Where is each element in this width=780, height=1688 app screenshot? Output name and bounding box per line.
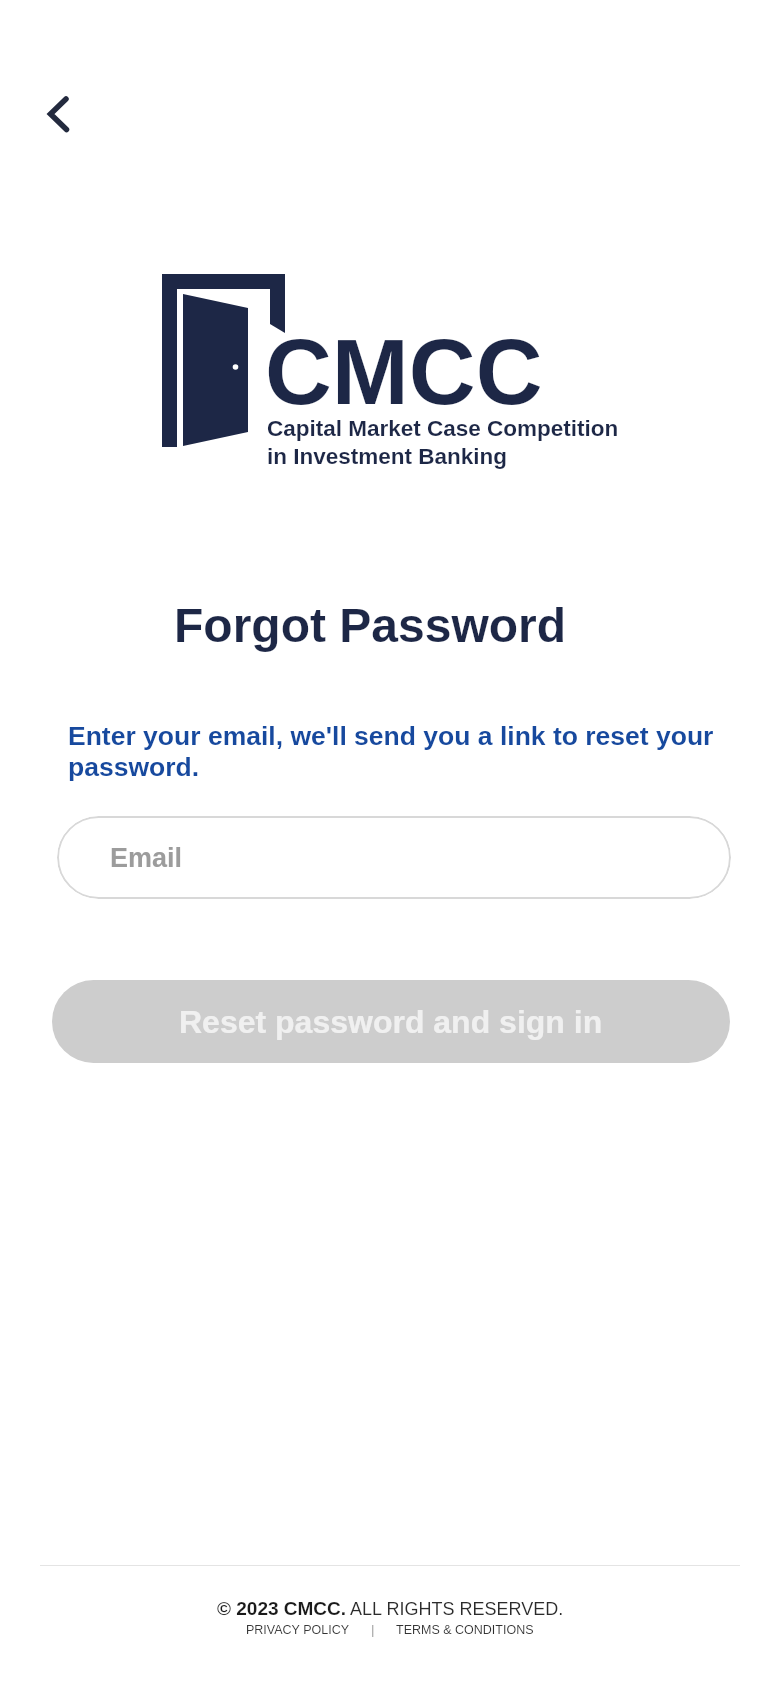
staticText: TERMS & CONDITIONS [396, 1623, 534, 1637]
staticText: | [371, 1622, 375, 1637]
button[interactable]: Email [57, 816, 731, 899]
staticText: Capital Market Case Competition in Inves… [267, 416, 619, 469]
staticText: Email [110, 843, 183, 873]
button[interactable]: PRIVACY POLICY [246, 1623, 350, 1637]
button[interactable]: TERMS & CONDITIONS [396, 1623, 534, 1637]
staticText: Enter your email, we'll send you a link … [68, 721, 714, 751]
staticText: password. [68, 752, 200, 782]
staticText: Forgot Password [174, 599, 567, 653]
button[interactable]: Reset password and sign in [52, 980, 730, 1063]
staticText: CMCC [265, 320, 543, 423]
staticText: © 2023 CMCC. ALL RIGHTS RESERVED. [217, 1598, 564, 1619]
staticText: Reset password and sign in [179, 1004, 603, 1040]
staticText: PRIVACY POLICY [246, 1623, 350, 1637]
button[interactable] [32, 88, 84, 140]
